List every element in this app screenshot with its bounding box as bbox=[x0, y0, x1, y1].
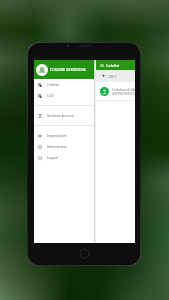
staticText: Gestione Account bbox=[47, 114, 74, 118]
button[interactable]: CUD bbox=[34, 90, 94, 101]
button[interactable]: Open navigation drawer bbox=[96, 60, 135, 70]
staticText: CUD bbox=[47, 94, 54, 98]
button[interactable]: Informazioni bbox=[34, 141, 94, 152]
button[interactable]: 2017 bbox=[96, 70, 135, 82]
staticText: Cedolini bbox=[106, 63, 119, 67]
staticText: Informazioni bbox=[47, 145, 67, 149]
staticText: 2017 bbox=[109, 74, 117, 78]
button[interactable]: Gestione Account bbox=[34, 110, 94, 121]
staticText: Logout bbox=[47, 156, 58, 160]
staticText: Cedolini bbox=[47, 83, 60, 87]
button[interactable]: Cedolino di GARUTI bbox=[96, 82, 135, 100]
staticText: Cedolino di GARUTI bbox=[112, 87, 135, 91]
button[interactable]: Logout bbox=[34, 152, 94, 163]
staticText: Impostazioni bbox=[47, 134, 67, 138]
staticText: COMUNE DI MODENA bbox=[50, 67, 86, 72]
staticText: GRZPNC76A01F257H bbox=[112, 92, 135, 96]
button[interactable]: Cedolini bbox=[34, 79, 94, 90]
button[interactable]: Impostazioni bbox=[34, 130, 94, 141]
